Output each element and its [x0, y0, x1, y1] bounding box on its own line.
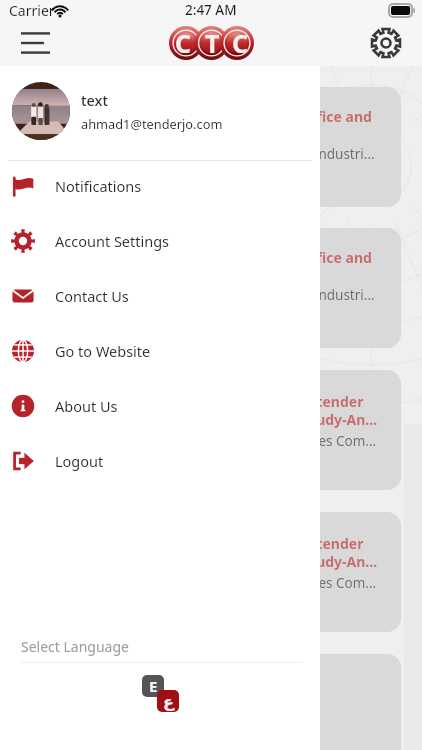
staticText: Announcement of a tender for supply of O… — [17, 107, 401, 126]
button[interactable]: Announcement of a tender for supply of O… — [12, 87, 401, 207]
button[interactable]: Settings — [363, 20, 409, 66]
staticText: Contact Us — [55, 286, 129, 306]
staticText: About Us — [55, 396, 118, 416]
staticText: T — [205, 26, 220, 60]
button[interactable] — [12, 654, 401, 750]
button[interactable]: About Us — [0, 378, 320, 433]
staticText: Notifications — [55, 176, 142, 196]
button[interactable]: Open navigation menu — [11, 20, 59, 66]
staticText: for the preparation of a Feasibility Stu… — [60, 552, 401, 571]
staticText: Select Language — [21, 637, 129, 656]
staticText: Account Settings — [55, 231, 170, 251]
staticText: Announcement regarding the invitation th… — [12, 392, 396, 411]
staticText: text — [81, 90, 109, 110]
staticText: C — [232, 26, 249, 60]
staticText: Establishment of the General Engineering… — [46, 145, 401, 163]
button[interactable]: Go to Website — [0, 323, 320, 378]
staticText: Announcement of a tender for supply of O… — [17, 248, 401, 267]
button[interactable]: Announcement regarding the invitation th… — [12, 512, 401, 632]
button[interactable]: Contact Us — [0, 268, 320, 323]
staticText: ع — [163, 692, 174, 711]
staticText: Announcement regarding the invitation th… — [12, 534, 396, 553]
staticText: 2:47 AM — [185, 1, 237, 19]
staticText: for the preparation of a Feasibility Stu… — [60, 410, 401, 429]
staticText: Jordanian Agricultural Marketing Houses … — [75, 432, 401, 450]
staticText: Logout — [55, 451, 104, 471]
staticText: Jordanian Agricultural Marketing Houses … — [75, 574, 401, 592]
button[interactable]: Announcement of a tender for supply of O… — [12, 228, 401, 348]
button[interactable]: Announcement regarding the invitation th… — [12, 370, 401, 490]
staticText: Establishment of the General Engineering… — [46, 286, 401, 304]
staticText: Go to Website — [55, 341, 151, 361]
button[interactable]: text — [0, 66, 320, 156]
staticText: C — [175, 26, 192, 60]
staticText: Carrier — [9, 1, 55, 20]
button[interactable]: Notifications — [0, 158, 320, 213]
button[interactable]: Select language — [142, 675, 182, 715]
staticText: ahmad1@tenderjo.com — [81, 115, 223, 132]
staticText: E — [149, 676, 158, 696]
button[interactable]: Logout — [0, 433, 320, 488]
button[interactable]: Account Settings — [0, 213, 320, 268]
